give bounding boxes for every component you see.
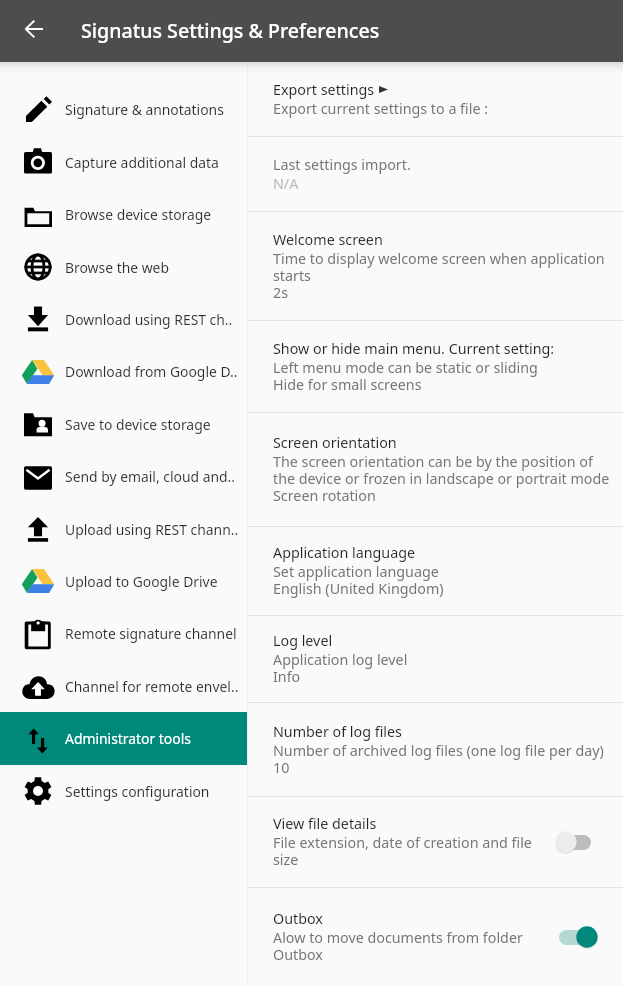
- button[interactable]: Settings configuration: [0, 765, 248, 817]
- staticText: Signature & annotations: [65, 100, 224, 119]
- staticText: Upload to Google Drive: [65, 572, 218, 591]
- staticText: Download from Google D..: [65, 362, 238, 381]
- button[interactable]: Show or hide main menu. Current setting:: [248, 321, 623, 412]
- staticText: Capture additional data: [65, 153, 219, 172]
- button[interactable]: Send by email, cloud and..: [0, 450, 248, 503]
- staticText: Browse device storage: [65, 205, 212, 224]
- staticText: View file details: [273, 814, 377, 833]
- staticText: Channel for remote envel..: [65, 677, 239, 696]
- staticText: Outbox: [273, 909, 323, 928]
- button[interactable]: Remote signature channel: [0, 607, 248, 660]
- staticText: Export current settings to a file :: [273, 99, 489, 118]
- staticText: Left menu mode can be static or sliding …: [273, 358, 538, 395]
- button[interactable]: Signature & annotations: [0, 83, 248, 136]
- staticText: Number of archived log files (one log fi…: [273, 741, 604, 778]
- button[interactable]: Export settings: [248, 62, 623, 136]
- button[interactable]: Number of log files: [248, 703, 623, 796]
- button[interactable]: Upload to Google Drive: [0, 555, 248, 607]
- button[interactable]: View file details: [248, 797, 623, 887]
- button[interactable]: Download using REST ch..: [0, 293, 248, 345]
- staticText: Set application language English (United…: [273, 562, 444, 599]
- staticText: Time to display welcome screen when appl…: [273, 249, 615, 303]
- staticText: Alow to move documents from folder Outbo…: [273, 928, 553, 965]
- button[interactable]: Log level: [248, 616, 623, 702]
- button[interactable]: Last settings import.: [248, 137, 623, 211]
- staticText: Last settings import.: [273, 155, 411, 174]
- button[interactable]: Browse the web: [0, 241, 248, 293]
- staticText: Number of log files: [273, 722, 402, 741]
- button[interactable]: Browse device storage: [0, 188, 248, 241]
- button[interactable]: Save to device storage: [0, 398, 248, 450]
- button[interactable]: Switch off: [555, 830, 598, 854]
- button[interactable]: Welcome screen: [248, 212, 623, 320]
- button[interactable]: Channel for remote envel..: [0, 660, 248, 712]
- button[interactable]: Administrator tools: [0, 712, 248, 765]
- staticText: Signatus Settings & Preferences: [81, 17, 380, 44]
- staticText: Download using REST ch..: [65, 310, 233, 329]
- staticText: Screen orientation: [273, 433, 397, 452]
- staticText: Application language: [273, 543, 416, 562]
- staticText: Remote signature channel: [65, 624, 237, 643]
- button[interactable]: Screen orientation: [248, 413, 623, 526]
- button[interactable]: Switch on: [555, 925, 598, 949]
- button[interactable]: Outbox: [248, 888, 623, 986]
- staticText: Log level: [273, 631, 333, 650]
- staticText: Application log level Info: [273, 650, 408, 687]
- staticText: Settings configuration: [65, 782, 210, 801]
- button[interactable]: Application language: [248, 527, 623, 615]
- button[interactable]: Back: [13, 8, 55, 50]
- staticText: Export settings: [273, 80, 375, 99]
- staticText: Show or hide main menu. Current setting:: [273, 339, 555, 358]
- button[interactable]: Download from Google D..: [0, 345, 248, 398]
- staticText: Upload using REST chann..: [65, 520, 239, 539]
- staticText: The screen orientation can be by the pos…: [273, 452, 615, 506]
- button[interactable]: Capture additional data: [0, 136, 248, 188]
- staticText: N/A: [273, 174, 299, 193]
- button[interactable]: Upload using REST chann..: [0, 503, 248, 555]
- staticText: Browse the web: [65, 258, 169, 277]
- staticText: Administrator tools: [65, 729, 191, 748]
- staticText: Save to device storage: [65, 415, 211, 434]
- staticText: File extension, date of creation and fil…: [273, 833, 553, 870]
- staticText: Welcome screen: [273, 230, 383, 249]
- staticText: Send by email, cloud and..: [65, 467, 236, 486]
